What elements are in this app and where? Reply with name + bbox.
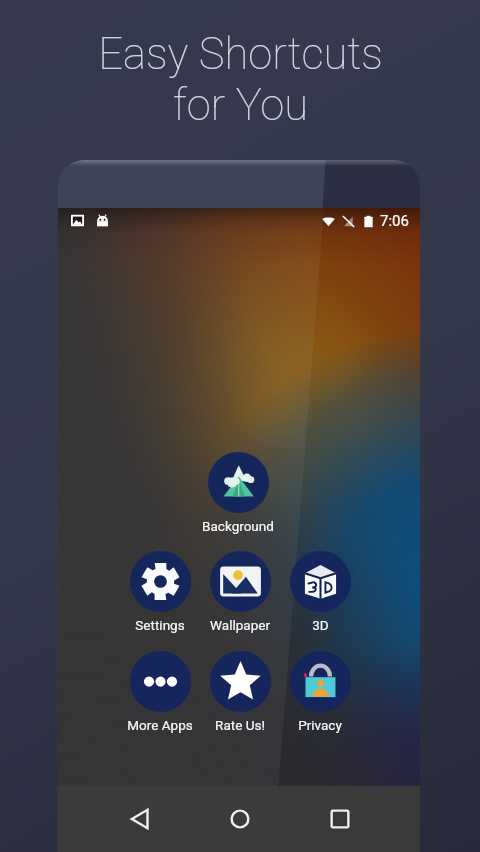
staticText: Rate Us! [215, 717, 265, 733]
staticText: 7:06 [380, 212, 409, 230]
staticText: Easy Shortcuts [98, 29, 383, 80]
button[interactable]: 3D [276, 551, 364, 633]
button[interactable]: Recents [318, 797, 362, 841]
staticText: Privacy [298, 717, 342, 733]
staticText: Background [202, 518, 274, 534]
button[interactable]: More Apps [116, 651, 204, 733]
staticText: Settings [135, 617, 185, 633]
button[interactable]: Settings [116, 551, 204, 633]
button[interactable]: Background [194, 452, 282, 534]
staticText: 3D [312, 617, 329, 633]
button[interactable]: Wallpaper [196, 551, 284, 633]
staticText: Wallpaper [210, 617, 270, 633]
button[interactable]: Back [118, 797, 162, 841]
button[interactable]: Home [218, 797, 262, 841]
staticText: More Apps [127, 717, 193, 733]
staticText: for You [173, 80, 308, 131]
button[interactable]: Rate Us! [196, 651, 284, 733]
button[interactable]: Privacy [276, 651, 364, 733]
